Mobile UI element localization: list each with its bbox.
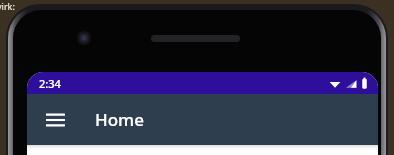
staticText: Home — [95, 108, 144, 131]
staticText: 2:34 — [39, 76, 61, 91]
staticText: virk: — [0, 0, 15, 12]
button[interactable]: Open navigation menu — [35, 100, 75, 140]
